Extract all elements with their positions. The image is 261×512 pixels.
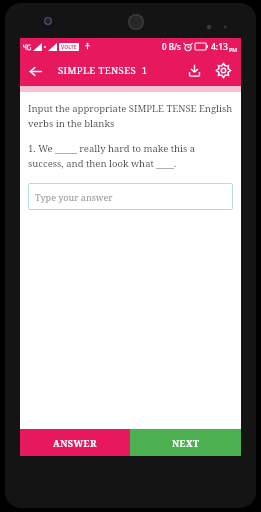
- staticText: SIMPLE TENSES 1: [58, 64, 148, 77]
- button[interactable]: Download: [181, 57, 208, 84]
- staticText: 0 B/s: [162, 41, 181, 52]
- button[interactable]: Type your answer: [28, 183, 233, 210]
- staticText: ANSWER: [53, 437, 97, 449]
- button[interactable]: Back: [20, 56, 50, 86]
- staticText: Input the appropriate SIMPLE TENSE Engli…: [28, 102, 233, 130]
- staticText: PM: [229, 46, 238, 53]
- button[interactable]: ANSWER: [20, 429, 130, 456]
- staticText: 1. We _____ really hard to make this a s…: [28, 142, 233, 170]
- staticText: Type your answer: [35, 191, 113, 203]
- staticText: 4:13: [211, 41, 228, 53]
- button[interactable]: Settings: [209, 56, 238, 85]
- staticText: VOLTE: [61, 44, 77, 51]
- staticText: NEXT: [172, 437, 200, 449]
- button[interactable]: NEXT: [130, 429, 241, 456]
